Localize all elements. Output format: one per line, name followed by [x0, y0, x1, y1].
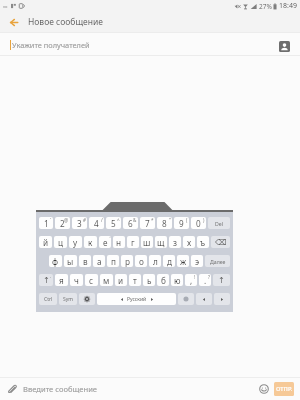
button[interactable]: ж — [177, 255, 189, 267]
staticText: п — [111, 256, 116, 267]
staticText: ( — [186, 217, 188, 223]
button[interactable]: Keyboard settings — [79, 293, 95, 305]
staticText: 8 — [162, 218, 167, 229]
button[interactable]: ю — [171, 274, 183, 286]
button[interactable]: м — [100, 274, 113, 286]
button[interactable]: д — [163, 255, 175, 267]
staticText: Новое сообщение — [28, 16, 103, 28]
button[interactable]: Move left — [196, 293, 212, 305]
staticText: Ctrl — [44, 296, 53, 303]
staticText: ю — [174, 275, 181, 286]
button[interactable]: к — [84, 236, 97, 248]
button[interactable]: н — [113, 236, 125, 248]
button[interactable]: Emoji — [257, 382, 271, 396]
button[interactable]: ш — [141, 236, 153, 248]
staticText: ОТПР. — [276, 385, 293, 393]
button[interactable]: Choose contacts — [276, 38, 292, 54]
button[interactable]: 2 — [55, 217, 70, 229]
button[interactable]: х — [183, 236, 195, 248]
staticText: м — [103, 275, 110, 286]
staticText: ` — [50, 217, 52, 223]
button[interactable]: ь — [143, 274, 155, 286]
staticText: р — [125, 256, 130, 267]
button[interactable]: 4 — [89, 217, 104, 229]
button[interactable]: , — [185, 274, 197, 286]
staticText: ) — [203, 217, 205, 223]
button[interactable]: 8 — [157, 217, 172, 229]
button[interactable]: ч — [70, 274, 83, 286]
button[interactable]: у — [69, 236, 82, 248]
button[interactable]: ⌫ — [211, 236, 230, 248]
button[interactable]: в — [79, 255, 91, 267]
button[interactable]: 5 — [106, 217, 121, 229]
staticText: х — [187, 237, 192, 248]
button[interactable]: Voice input — [178, 293, 194, 305]
button[interactable]: я — [55, 274, 68, 286]
staticText: ц — [58, 237, 64, 248]
button[interactable]: ъ — [197, 236, 209, 248]
staticText: ! — [194, 274, 196, 280]
button[interactable]: Del — [208, 217, 230, 229]
button[interactable]: Укажите получателей — [0, 33, 300, 56]
staticText: ʺ — [169, 217, 171, 223]
staticText: з — [173, 237, 177, 248]
button[interactable]: э — [191, 255, 203, 267]
staticText: я — [59, 275, 64, 286]
button[interactable]: . — [199, 274, 211, 286]
staticText: г — [131, 237, 135, 248]
staticText: / — [101, 217, 103, 223]
button[interactable]: ↑ — [39, 274, 53, 286]
button[interactable]: 0 — [191, 217, 206, 229]
button[interactable]: ОТПР. — [274, 382, 294, 396]
staticText: ? — [208, 274, 210, 280]
staticText: ^ — [117, 217, 120, 223]
staticText: и — [118, 275, 124, 286]
button[interactable]: а — [93, 255, 105, 267]
staticText: с — [89, 275, 94, 286]
button[interactable]: и — [115, 274, 127, 286]
button[interactable]: ы — [64, 255, 77, 267]
staticText: 6 — [128, 218, 133, 229]
button[interactable]: р — [121, 255, 133, 267]
button[interactable]: е — [99, 236, 111, 248]
staticText: ⌫ — [215, 237, 227, 247]
button[interactable]: Attach file — [4, 381, 20, 397]
staticText: б — [161, 275, 166, 286]
button[interactable]: 6 — [123, 217, 138, 229]
staticText: 3 — [77, 218, 82, 229]
button[interactable]: г — [127, 236, 139, 248]
staticText: * — [151, 217, 154, 223]
staticText: 5 — [111, 218, 116, 229]
button[interactable]: Далее — [205, 255, 230, 267]
staticText: н — [116, 237, 122, 248]
button[interactable]: й — [39, 236, 52, 248]
button[interactable]: 9 — [174, 217, 189, 229]
button[interactable]: 7 — [140, 217, 155, 229]
button[interactable]: Sym — [59, 293, 77, 305]
staticText: ч — [74, 275, 79, 286]
staticText: е — [103, 237, 108, 248]
staticText: 0 — [196, 218, 201, 229]
button[interactable]: 1 — [39, 217, 53, 229]
button[interactable]: б — [157, 274, 169, 286]
button[interactable]: т — [129, 274, 141, 286]
button[interactable]: с — [85, 274, 98, 286]
button[interactable]: ц — [54, 236, 67, 248]
button[interactable]: ↑ — [213, 274, 230, 286]
staticText: к — [88, 237, 93, 248]
button[interactable]: о — [135, 255, 147, 267]
button[interactable]: Back — [0, 11, 28, 33]
button[interactable]: Move right — [214, 293, 230, 305]
staticText: Del — [215, 220, 224, 227]
staticText: ↑ — [218, 275, 225, 285]
button[interactable]: 3 — [72, 217, 87, 229]
button[interactable]: ф — [49, 255, 62, 267]
staticText: Sym — [63, 296, 73, 303]
button[interactable]: п — [107, 255, 119, 267]
button[interactable]: щ — [155, 236, 167, 248]
button[interactable]: Русский — [97, 293, 176, 305]
button[interactable]: Ctrl — [39, 293, 57, 305]
button[interactable]: з — [169, 236, 181, 248]
staticText: 27% — [259, 2, 272, 11]
button[interactable]: л — [149, 255, 161, 267]
